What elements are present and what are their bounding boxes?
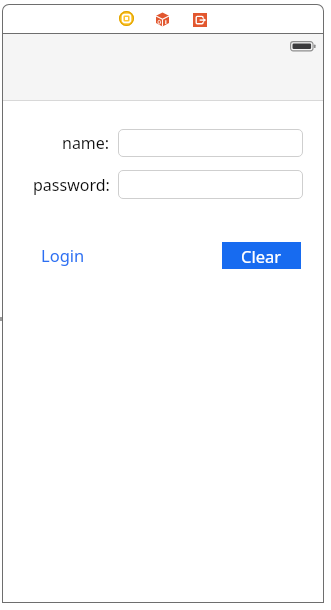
button[interactable]	[118, 170, 303, 199]
staticText: name:	[62, 132, 110, 154]
button[interactable]	[155, 12, 170, 27]
button[interactable]	[193, 13, 207, 27]
staticText: Login	[41, 244, 85, 266]
button[interactable]: Clear	[222, 242, 301, 269]
button[interactable]	[118, 129, 303, 157]
staticText: password:	[33, 174, 110, 196]
button[interactable]	[119, 11, 134, 26]
staticText: Clear	[241, 245, 282, 267]
button[interactable]: Login	[37, 242, 89, 268]
